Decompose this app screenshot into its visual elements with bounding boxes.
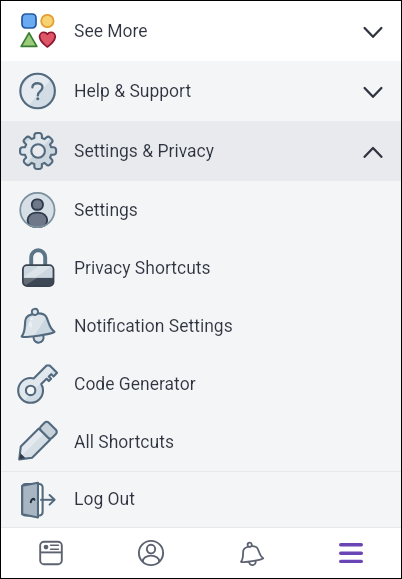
button[interactable]: Privacy Shortcuts	[1, 239, 401, 297]
button[interactable]: Log Out	[1, 472, 401, 527]
staticText: Settings	[74, 200, 138, 221]
staticText: All Shortcuts	[74, 432, 174, 453]
button[interactable]: Help & Support	[1, 61, 401, 121]
button[interactable]: Settings & Privacy	[1, 121, 401, 181]
staticText: Settings & Privacy	[74, 141, 214, 162]
button[interactable]: Notification Settings	[1, 297, 401, 355]
staticText: See More	[74, 21, 148, 42]
staticText: Log Out	[74, 489, 135, 510]
staticText: Notification Settings	[74, 316, 233, 337]
button[interactable]: Code Generator	[1, 355, 401, 413]
button[interactable]: All Shortcuts	[1, 413, 401, 471]
button[interactable]: Profile	[101, 528, 201, 578]
button[interactable]: Notifications	[201, 528, 301, 578]
staticText: Code Generator	[74, 374, 196, 395]
button[interactable]: See More	[1, 1, 401, 61]
button[interactable]: News Feed	[1, 528, 101, 578]
button[interactable]: Settings	[1, 181, 401, 239]
staticText: Help & Support	[74, 81, 192, 102]
button[interactable]: Menu	[301, 528, 401, 578]
staticText: Privacy Shortcuts	[74, 258, 211, 279]
